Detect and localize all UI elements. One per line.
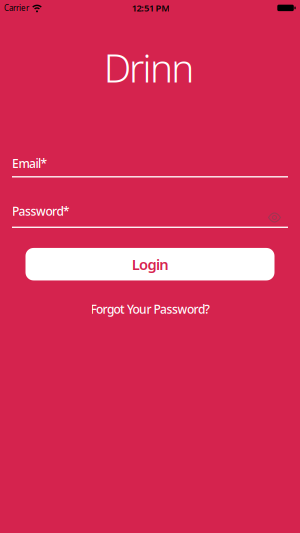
staticText: Carrier [4,3,29,13]
staticText: Drinn [104,42,194,93]
staticText: 12:51 PM [132,2,170,14]
button[interactable]: Login [25,248,274,280]
button[interactable]: Password [12,203,288,229]
staticText: Password* [12,203,70,219]
button[interactable]: Show password [268,213,281,222]
staticText: Login [132,254,168,274]
button[interactable]: Forgot Your Password? [90,301,209,317]
button[interactable]: Email [12,155,288,179]
staticText: Email* [12,155,47,171]
staticText: Forgot Your Password? [90,301,209,317]
